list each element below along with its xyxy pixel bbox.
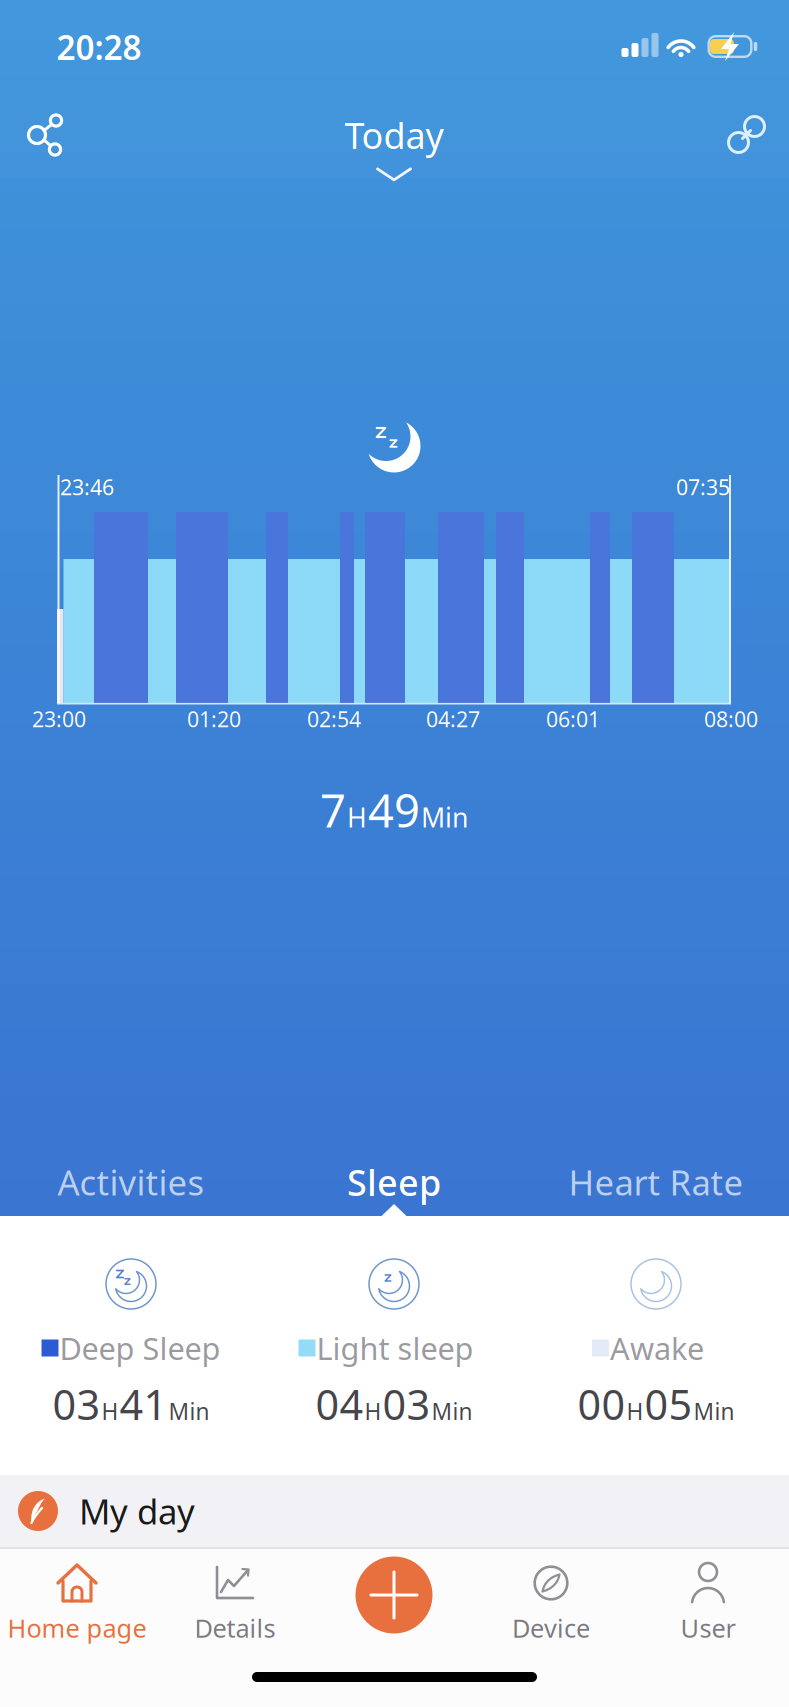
staticText: 04:27 [426,705,480,733]
staticText: 04 [315,1377,363,1431]
staticText: 06:01 [546,705,600,733]
button[interactable]: Add [355,1556,433,1634]
staticText: 20:28 [56,25,141,69]
staticText: H [101,1396,118,1426]
button[interactable]: User [623,1548,789,1648]
staticText: Light sleep [316,1328,473,1368]
staticText: User [680,1611,735,1645]
staticText: H [347,799,367,835]
staticText: 01:20 [187,705,241,733]
button[interactable]: Heart Rate [536,1147,776,1217]
staticText: Awake [610,1328,704,1368]
staticText: 07:35 [676,473,730,501]
staticText: Heart Rate [568,1159,743,1205]
staticText: 03 [382,1377,430,1431]
staticText: 41 [119,1377,167,1431]
button[interactable]: Device [466,1548,636,1648]
button[interactable]: Pair device [714,102,778,166]
staticText: Min [421,799,468,835]
staticText: Deep Sleep [59,1328,220,1368]
button[interactable]: Sleep [294,1147,494,1217]
button[interactable]: Home page [0,1548,162,1648]
staticText: Details [194,1611,275,1645]
button[interactable]: Today [344,111,443,181]
staticText: Home page [7,1611,146,1645]
staticText: Today [344,111,443,159]
staticText: Activities [57,1159,204,1205]
staticText: Device [512,1611,590,1645]
staticText: 03 [52,1377,100,1431]
staticText: 02:54 [307,705,361,733]
staticText: Sleep [347,1158,441,1206]
staticText: H [626,1396,643,1426]
staticText: 00 [577,1377,625,1431]
staticText: 7 [320,780,346,840]
staticText: 08:00 [704,705,758,733]
staticText: 49 [368,780,420,840]
staticText: Min [431,1396,472,1426]
staticText: 23:46 [60,473,114,501]
button[interactable]: Details [150,1548,320,1648]
staticText: Min [693,1396,734,1426]
staticText: 23:00 [32,705,86,733]
button[interactable]: Share [12,102,76,166]
staticText: H [364,1396,381,1426]
staticText: 05 [644,1377,692,1431]
staticText: My day [79,1488,195,1534]
button[interactable]: My day [0,1475,789,1547]
button[interactable]: Activities [11,1147,251,1217]
staticText: Min [168,1396,209,1426]
